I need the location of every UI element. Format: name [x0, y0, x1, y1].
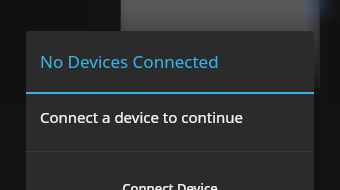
staticText: Connect a device to continue [40, 107, 244, 127]
staticText: Connect Device [122, 179, 218, 190]
button[interactable]: Connect Device [26, 152, 314, 190]
staticText: No Devices Connected [40, 50, 219, 73]
